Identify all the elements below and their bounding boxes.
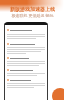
staticText: 新版游戏加速器上线 <box>10 6 55 12</box>
staticText: 极速联机 更低延迟 畅玩 <box>11 13 54 18</box>
button[interactable]: Download <box>52 88 64 100</box>
